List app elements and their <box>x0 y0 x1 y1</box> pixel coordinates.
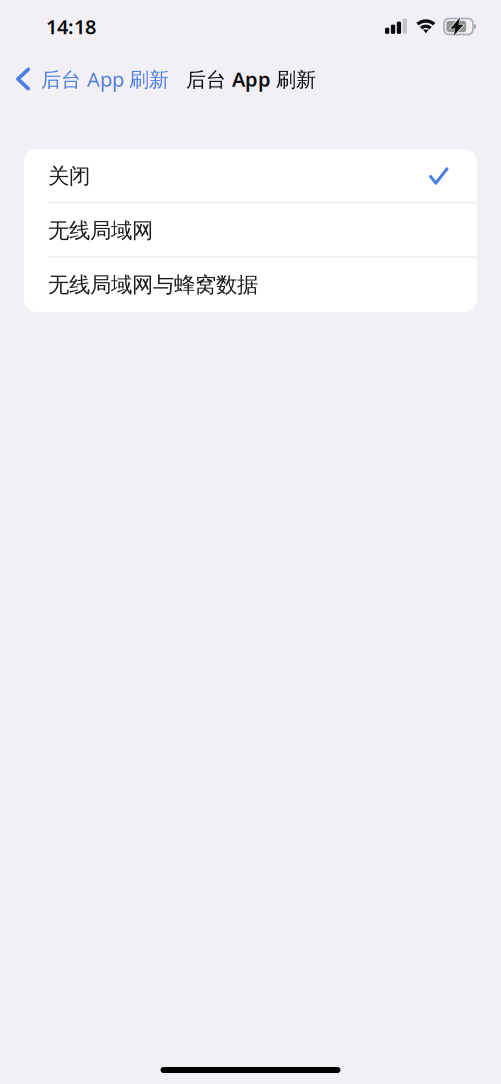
button[interactable]: 关闭 <box>24 149 477 203</box>
staticText: 14:18 <box>46 13 96 40</box>
button[interactable]: 无线局域网与蜂窝数据 <box>24 258 477 312</box>
staticText: 无线局域网与蜂窝数据 <box>48 272 258 298</box>
staticText: 后台 App 刷新 <box>41 66 169 92</box>
staticText: 无线局域网 <box>48 217 153 244</box>
staticText: 后台 App 刷新 <box>186 66 316 92</box>
button[interactable]: 无线局域网 <box>24 203 477 258</box>
staticText: 关闭 <box>48 163 90 189</box>
button[interactable]: 后台 App 刷新 <box>0 59 169 99</box>
